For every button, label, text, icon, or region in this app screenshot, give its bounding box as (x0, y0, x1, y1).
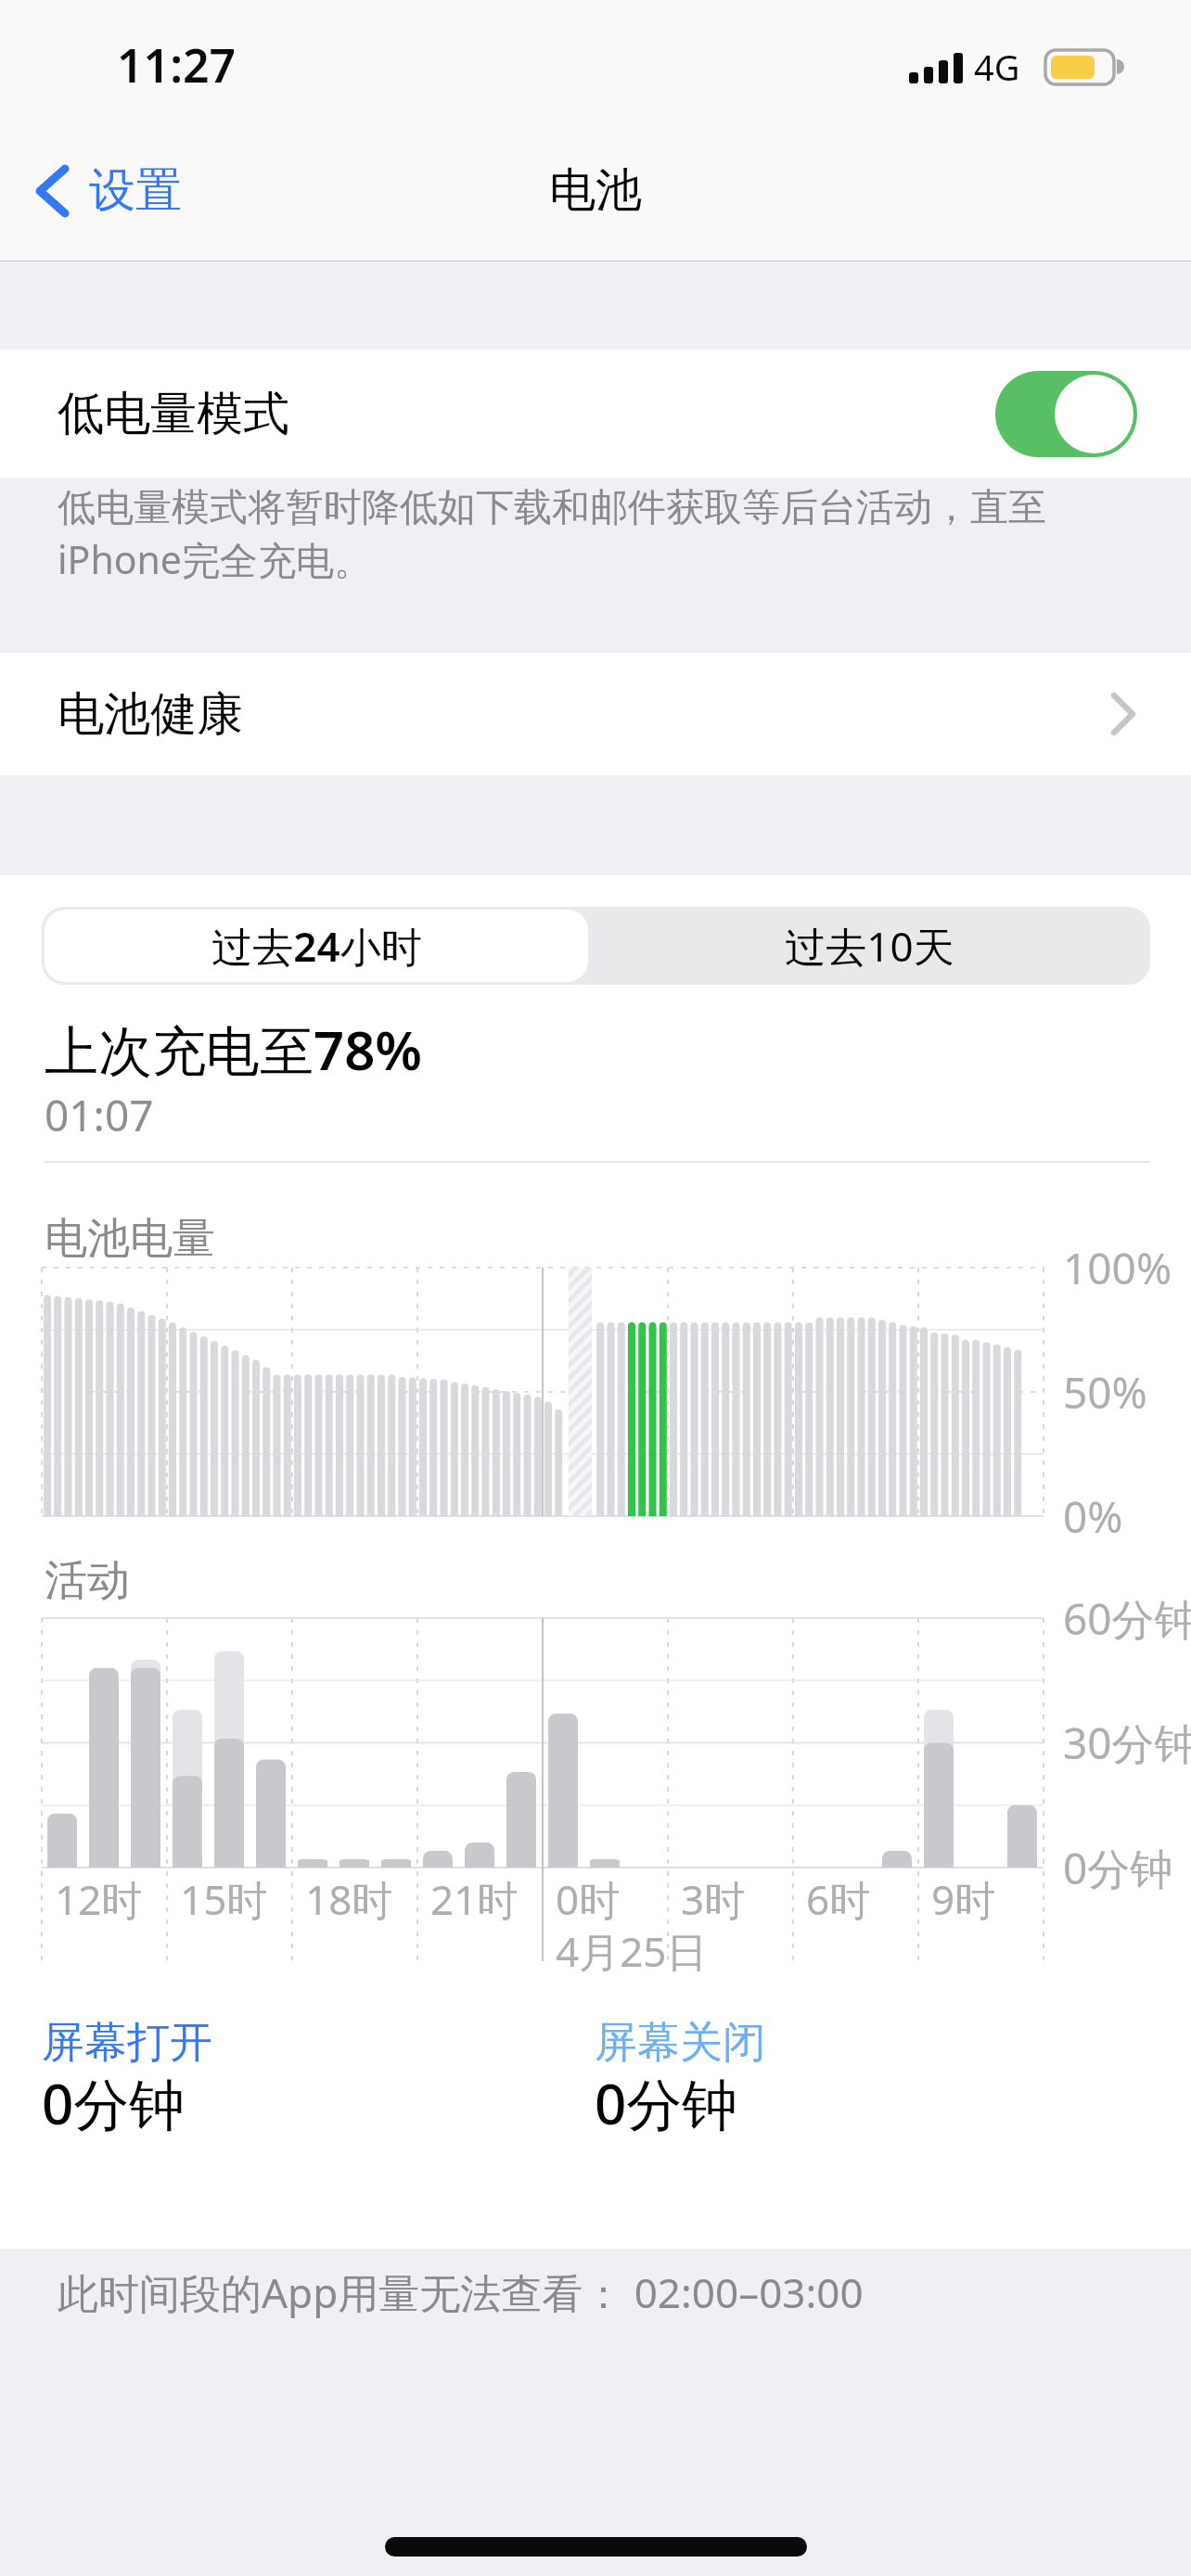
staticText: 活动 (45, 1554, 130, 1608)
staticText: 屏幕关闭 (595, 2016, 765, 2070)
button[interactable] (0, 653, 1191, 775)
staticText: 设置 (89, 161, 182, 220)
staticText: 屏幕打开 (42, 2016, 212, 2070)
staticText: 0分钟 (42, 2065, 186, 2141)
button[interactable] (19, 148, 278, 241)
staticText: 15时 (180, 1871, 268, 1927)
staticText: 电池 (549, 161, 642, 220)
staticText: 60分钟 (1063, 1589, 1191, 1648)
staticText: iPhone完全充电。 (58, 533, 372, 585)
staticText: 0分钟 (1063, 1839, 1173, 1897)
staticText: 过去10天 (785, 918, 954, 974)
staticText: 过去24小时 (211, 918, 422, 974)
staticText: 12时 (55, 1871, 143, 1927)
staticText: 4月25日 (556, 1923, 708, 1979)
staticText: 低电量模式将暂时降低如下载和邮件获取等后台活动，直至 (58, 484, 1046, 532)
staticText: 4G (974, 43, 1020, 91)
staticText: 上次充电至78% (45, 1013, 423, 1086)
button[interactable] (0, 350, 1191, 478)
button[interactable] (45, 910, 588, 982)
staticText: 0时 (556, 1871, 621, 1927)
staticText: 11:27 (117, 33, 237, 96)
staticText: 低电量模式 (58, 385, 289, 443)
staticText: 3时 (681, 1871, 746, 1927)
staticText: 30分钟 (1063, 1714, 1191, 1772)
staticText: 6时 (806, 1871, 871, 1927)
staticText: 0分钟 (595, 2065, 738, 2141)
staticText: 9时 (931, 1871, 996, 1927)
staticText: 50% (1063, 1363, 1147, 1422)
staticText: 此时间段的App用量无法查看： 02:00–03:00 (58, 2264, 864, 2320)
button[interactable] (588, 910, 1150, 982)
staticText: 电池电量 (45, 1212, 215, 1266)
staticText: 18时 (305, 1871, 393, 1927)
staticText: 01:07 (45, 1086, 154, 1144)
button[interactable] (995, 371, 1137, 457)
staticText: 电池健康 (58, 685, 243, 744)
staticText: 100% (1063, 1239, 1172, 1297)
staticText: 21时 (430, 1871, 519, 1927)
staticText: 0% (1063, 1487, 1123, 1546)
